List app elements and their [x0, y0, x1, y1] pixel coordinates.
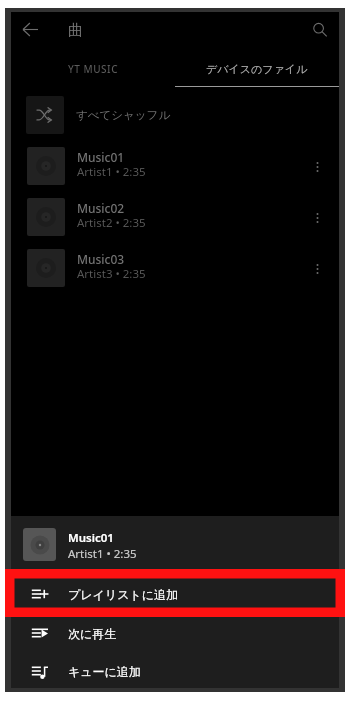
staticText: 曲: [68, 21, 83, 40]
staticText: Artist1 • 2:35: [68, 546, 137, 562]
staticText: Artist1 • 2:35: [77, 164, 146, 180]
staticText: プレイリストに追加: [68, 587, 178, 602]
button[interactable]: Music02: [11, 192, 339, 243]
staticText: 次に再生: [68, 626, 117, 641]
staticText: Music01: [77, 149, 125, 165]
button[interactable]: Search: [303, 13, 337, 47]
button[interactable]: Back: [12, 14, 48, 44]
staticText: Music02: [77, 200, 125, 216]
button[interactable]: キューに追加: [11, 652, 339, 690]
button[interactable]: YT MUSIC: [11, 51, 175, 87]
staticText: キューに追加: [68, 664, 141, 679]
staticText: Music01: [68, 530, 114, 546]
staticText: Artist2 • 2:35: [77, 215, 146, 231]
button[interactable]: More options: [300, 192, 334, 243]
button[interactable]: デバイスのファイル: [175, 51, 339, 87]
button[interactable]: すべてシャッフル: [11, 90, 339, 140]
button[interactable]: Music01: [11, 141, 339, 192]
staticText: Music03: [77, 251, 125, 267]
staticText: すべてシャッフル: [76, 108, 171, 122]
button[interactable]: Music03: [11, 243, 339, 294]
button[interactable]: More options: [300, 243, 334, 294]
button[interactable]: 次に再生: [11, 614, 339, 652]
button[interactable]: More options: [300, 141, 334, 192]
staticText: デバイスのファイル: [206, 62, 308, 76]
staticText: YT MUSIC: [68, 62, 119, 76]
staticText: Artist3 • 2:35: [77, 266, 146, 282]
button[interactable]: プレイリストに追加: [11, 575, 339, 613]
